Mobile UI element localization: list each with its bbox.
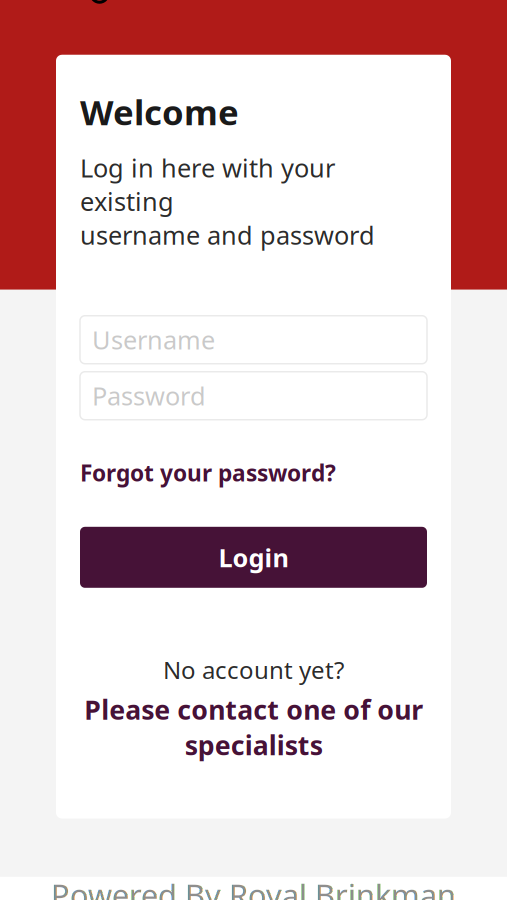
staticText: Login [218,540,288,574]
staticText: Please contact one of our specialists [84,692,423,762]
staticText: Welcome [80,89,239,135]
button[interactable]: Password [80,372,427,420]
staticText: No account yet? [163,654,344,686]
staticText: Powered By Royal Brinkman [51,874,456,900]
staticText: Forgot your password? [80,458,336,488]
staticText: Username [92,323,215,356]
staticText: Log in here with your existing username … [80,151,375,252]
button[interactable]: Login [80,527,427,588]
button[interactable]: Username [80,316,427,364]
button[interactable]: Forgot your password? [80,458,336,488]
staticText: Password [92,379,206,412]
button[interactable]: Please contact one of our specialists [84,692,423,762]
